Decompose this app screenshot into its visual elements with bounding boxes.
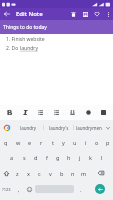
button[interactable]: Symbols bbox=[0, 181, 13, 197]
button[interactable]: r bbox=[36, 135, 47, 150]
button[interactable]: i bbox=[80, 135, 91, 150]
button[interactable]: u bbox=[69, 135, 80, 150]
staticText: . bbox=[80, 186, 82, 193]
staticText: k bbox=[89, 154, 92, 161]
staticText: 1. Finish website bbox=[6, 36, 45, 43]
button[interactable]: f bbox=[41, 150, 52, 165]
staticText: i bbox=[85, 139, 87, 146]
staticText: o bbox=[95, 139, 99, 146]
staticText: laundry bbox=[20, 45, 38, 52]
button[interactable]: c bbox=[34, 165, 45, 181]
button[interactable]: e bbox=[24, 135, 36, 150]
staticText: z bbox=[16, 170, 19, 177]
button[interactable]: a bbox=[6, 150, 18, 165]
staticText: c bbox=[38, 170, 41, 177]
button[interactable]: y bbox=[58, 135, 69, 150]
button[interactable]: More options bbox=[103, 9, 113, 19]
button[interactable]: laundrymen bbox=[74, 120, 103, 135]
button[interactable]: Save note bbox=[79, 8, 91, 20]
button[interactable]: Italic bbox=[19, 106, 32, 119]
button[interactable]: Expand suggestions bbox=[103, 123, 113, 133]
button[interactable]: l bbox=[96, 150, 107, 165]
button[interactable]: Shift bbox=[0, 165, 12, 181]
staticText: j bbox=[79, 154, 81, 161]
button[interactable]: n bbox=[67, 165, 78, 181]
button[interactable]: g bbox=[52, 150, 63, 165]
staticText: m bbox=[81, 170, 87, 177]
button[interactable]: Backspace bbox=[89, 165, 113, 181]
staticText: q bbox=[4, 139, 8, 146]
button[interactable]: Bold bbox=[3, 106, 16, 119]
button[interactable]: Enter bbox=[87, 181, 113, 197]
staticText: f bbox=[46, 154, 48, 161]
staticText: w bbox=[16, 139, 21, 146]
button[interactable]: q bbox=[0, 135, 12, 150]
button[interactable]: x bbox=[23, 165, 34, 181]
button[interactable]: Bulleted list bbox=[34, 106, 47, 119]
button[interactable]: Numbered list bbox=[50, 106, 63, 119]
button[interactable]: s bbox=[18, 150, 30, 165]
button[interactable]: d bbox=[30, 150, 41, 165]
staticText: t bbox=[52, 139, 54, 146]
button[interactable]: j bbox=[74, 150, 85, 165]
staticText: ?123 bbox=[2, 187, 11, 192]
staticText: p bbox=[106, 139, 110, 146]
button[interactable]: z bbox=[12, 165, 23, 181]
button[interactable]: t bbox=[47, 135, 58, 150]
staticText: v bbox=[49, 170, 52, 177]
staticText: x bbox=[27, 170, 30, 177]
staticText: , bbox=[18, 186, 20, 193]
staticText: g bbox=[56, 154, 60, 161]
button[interactable]: laundry's bbox=[44, 120, 73, 135]
button[interactable]: b bbox=[56, 165, 67, 181]
button[interactable]: Comma bbox=[13, 181, 24, 197]
staticText: a bbox=[10, 154, 14, 161]
staticText: laundrymen bbox=[76, 125, 102, 131]
button[interactable]: Underline bbox=[66, 106, 79, 119]
staticText: b bbox=[60, 170, 64, 177]
button[interactable]: o bbox=[91, 135, 102, 150]
button[interactable]: Google search bbox=[0, 121, 13, 134]
staticText: laundry bbox=[20, 125, 37, 131]
button[interactable]: Text colour bbox=[82, 106, 95, 119]
staticText: laundry's bbox=[49, 125, 69, 131]
staticText: h bbox=[67, 154, 71, 161]
staticText: Things to do today bbox=[3, 24, 47, 31]
staticText: d bbox=[34, 154, 38, 161]
button[interactable]: w bbox=[12, 135, 24, 150]
staticText: e bbox=[28, 139, 32, 146]
button[interactable]: Delete note bbox=[67, 8, 79, 20]
button[interactable]: Period bbox=[74, 181, 87, 197]
staticText: r bbox=[40, 139, 43, 146]
button[interactable]: k bbox=[85, 150, 96, 165]
button[interactable]: Favorite bbox=[91, 8, 103, 20]
staticText: 2. Do bbox=[6, 45, 20, 52]
staticText: s bbox=[23, 154, 26, 161]
button[interactable]: Back bbox=[0, 8, 13, 20]
staticText: n bbox=[71, 170, 75, 177]
staticText: Edit Note bbox=[16, 10, 43, 18]
button[interactable]: v bbox=[45, 165, 56, 181]
button[interactable]: laundry bbox=[13, 120, 43, 135]
staticText: l bbox=[101, 154, 103, 161]
button[interactable]: Emoji bbox=[24, 181, 35, 197]
button[interactable]: p bbox=[102, 135, 113, 150]
button[interactable]: Highlight bbox=[97, 106, 110, 119]
button[interactable]: m bbox=[78, 165, 89, 181]
staticText: y bbox=[62, 139, 65, 146]
staticText: u bbox=[73, 139, 77, 146]
button[interactable]: h bbox=[63, 150, 74, 165]
